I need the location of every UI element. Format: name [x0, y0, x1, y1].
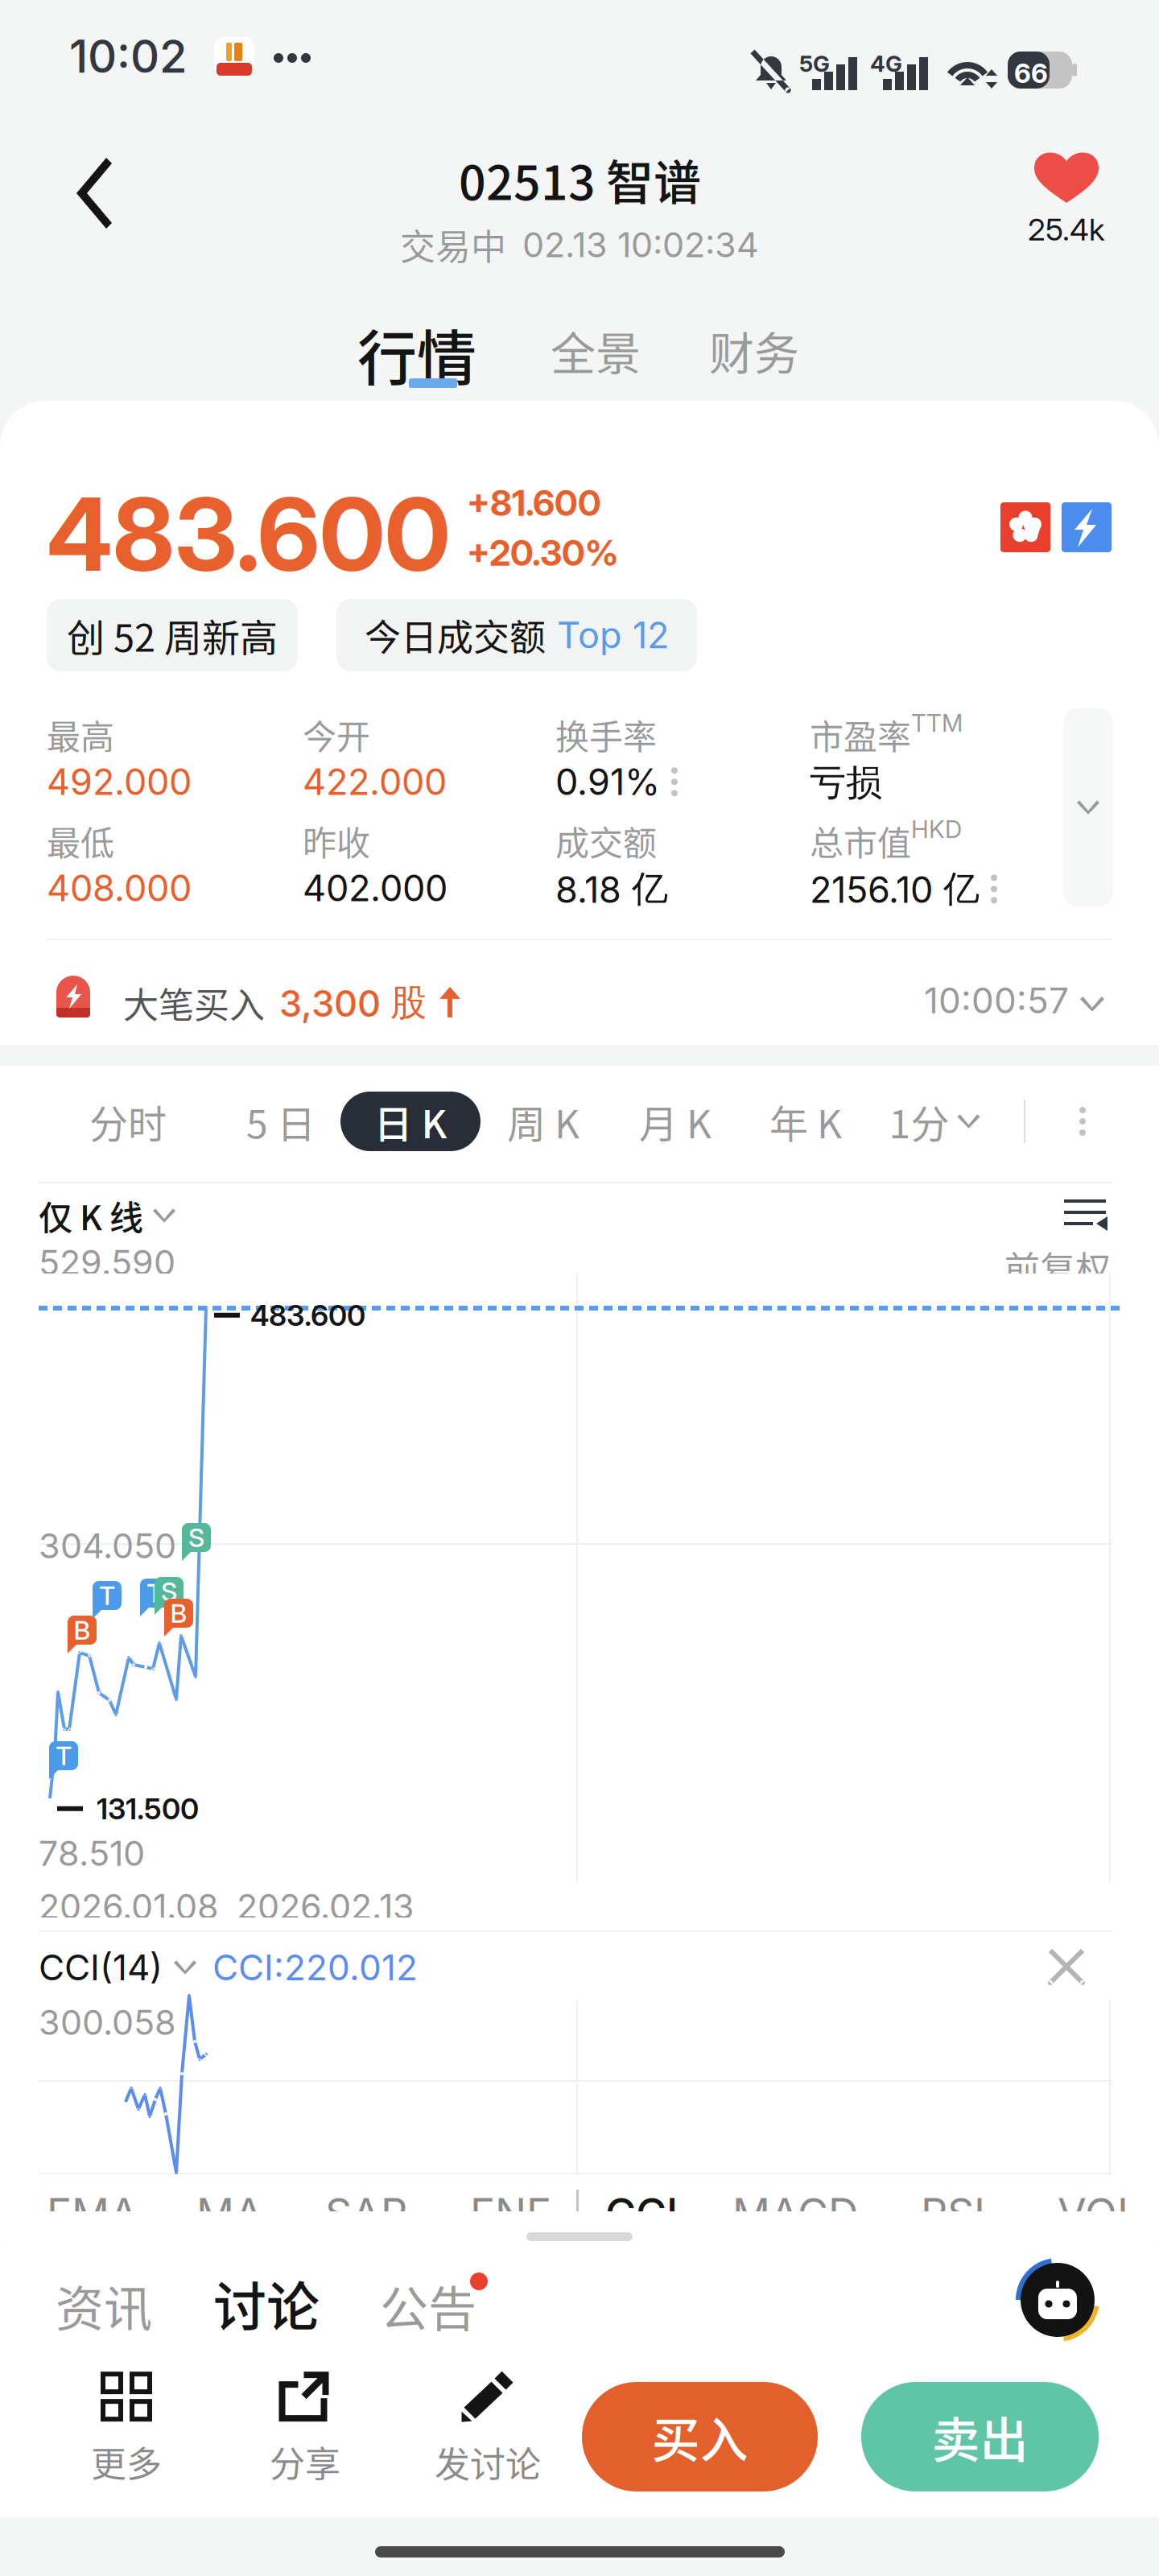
staticText: 仅 K 线	[39, 1191, 143, 1240]
button[interactable]: 公告	[380, 2271, 502, 2340]
staticText: 昨收	[303, 816, 370, 865]
button[interactable]: AI assistant	[1016, 2258, 1099, 2342]
button[interactable]: 卖出	[861, 2382, 1099, 2491]
staticText: 交易中	[400, 219, 506, 270]
staticText: 发讨论	[435, 2436, 541, 2488]
button[interactable]: Remove CCI indicator	[1046, 1946, 1087, 1987]
staticText: T	[56, 1740, 72, 1771]
staticText: 成交额	[555, 816, 657, 865]
button[interactable]: Chart options	[1054, 1092, 1111, 1151]
staticText: 分享	[270, 2436, 340, 2487]
button[interactable]: 全景	[546, 316, 645, 385]
staticText: 年 K	[769, 1093, 842, 1149]
staticText: 1分	[889, 1093, 949, 1149]
staticText: 408.000	[47, 866, 192, 910]
staticText: 304.050	[39, 1525, 176, 1567]
button[interactable]: 周 K	[493, 1092, 594, 1151]
staticText: 4G	[870, 50, 902, 77]
button[interactable]: CCI(14)	[39, 1945, 196, 1990]
button[interactable]: 财务	[704, 316, 804, 385]
button[interactable]: 创 52 周新高	[47, 599, 298, 671]
staticText: 300.058	[39, 2001, 176, 2043]
staticText: 483.600	[250, 1298, 365, 1333]
button[interactable]: 更多	[68, 2377, 185, 2482]
staticText: 最低	[47, 816, 114, 865]
staticText: 25.4k	[1028, 211, 1105, 248]
button[interactable]: 讨论	[206, 2266, 327, 2340]
staticText: 卖出	[932, 2402, 1028, 2472]
staticText: 买入	[652, 2402, 748, 2472]
staticText: ENE	[470, 2188, 551, 2239]
staticText: 今日成交额	[365, 609, 546, 661]
staticText: CCI	[605, 2188, 678, 2239]
button[interactable]: 1分	[874, 1092, 995, 1151]
staticText: 529.590	[39, 1241, 175, 1283]
staticText: 402.000	[303, 866, 448, 910]
staticText: 2026.01.08	[39, 1885, 219, 1927]
staticText: 5G	[799, 50, 830, 77]
staticText: 行情	[357, 311, 476, 397]
staticText: 全景	[551, 318, 641, 383]
staticText: 今开	[303, 710, 370, 759]
staticText: HKD	[911, 815, 962, 844]
button[interactable]: 年 K	[755, 1092, 856, 1151]
button[interactable]: 资讯	[50, 2271, 158, 2340]
staticText: 分时	[89, 1093, 167, 1149]
button[interactable]: 仅 K 线	[39, 1191, 175, 1240]
staticText: 10:02	[69, 29, 188, 84]
staticText: TTM	[911, 708, 963, 738]
staticText: 周 K	[507, 1093, 579, 1149]
staticText: 市盈率	[810, 710, 911, 759]
staticText: T	[99, 1580, 115, 1611]
staticText: 大笔买入	[123, 977, 265, 1029]
staticText: B	[74, 1615, 91, 1646]
staticText: 创 52 周新高	[67, 608, 278, 663]
staticText: 月 K	[639, 1093, 711, 1149]
staticText: CCI:220.012	[212, 1946, 418, 1989]
staticText: 483.600	[47, 473, 450, 595]
button[interactable]: 今日成交额	[336, 599, 697, 671]
staticText: 亏损	[810, 760, 882, 806]
staticText: 02513 智谱	[459, 145, 701, 214]
staticText: 最高	[47, 710, 114, 759]
staticText: 2026.02.13	[237, 1885, 415, 1927]
staticText: +20.30%	[467, 531, 618, 574]
staticText: 讨论	[213, 2265, 320, 2342]
button[interactable]: Back	[53, 140, 166, 246]
button[interactable]: Expand statistics	[1064, 708, 1112, 906]
staticText: 131.500	[97, 1791, 199, 1826]
staticText: 5 日	[246, 1093, 316, 1149]
button[interactable]: 日 K	[340, 1092, 481, 1151]
staticText: 2156.10 亿	[810, 866, 980, 912]
staticText: 422.000	[303, 760, 447, 804]
staticText: 78.510	[39, 1832, 145, 1874]
staticText: B	[170, 1598, 187, 1629]
staticText: 0.91%	[555, 760, 660, 804]
staticText: 总市值	[810, 816, 911, 865]
button[interactable]: 行情	[357, 311, 483, 393]
staticText: 3,300 股	[279, 980, 427, 1026]
button[interactable]: 买入	[582, 2382, 818, 2491]
staticText: 前复权	[1004, 1241, 1111, 1293]
staticText: 公告	[380, 2271, 476, 2341]
staticText: +81.600	[467, 481, 601, 524]
staticText: S	[161, 1576, 177, 1607]
staticText: 492.000	[47, 760, 192, 804]
button[interactable]: Chart settings	[1064, 1198, 1109, 1233]
staticText: T	[146, 1577, 163, 1609]
button[interactable]: 分时	[80, 1092, 175, 1151]
staticText: Top 12	[557, 613, 669, 657]
staticText: 66	[1014, 57, 1048, 89]
staticText: SAR	[325, 2188, 407, 2239]
staticText: 资讯	[56, 2271, 152, 2341]
staticText: MACD	[732, 2188, 859, 2239]
staticText: 财务	[709, 318, 799, 383]
button[interactable]: 发讨论	[419, 2377, 557, 2482]
staticText: MA	[196, 2188, 263, 2239]
button[interactable]: 月 K	[625, 1092, 726, 1151]
button[interactable]: Favorite, 25.4 thousand	[1008, 142, 1125, 254]
staticText: 换手率	[555, 710, 657, 759]
button[interactable]: 分享	[246, 2377, 364, 2482]
button[interactable]: 5 日	[230, 1092, 332, 1151]
staticText: 日 K	[374, 1093, 447, 1149]
